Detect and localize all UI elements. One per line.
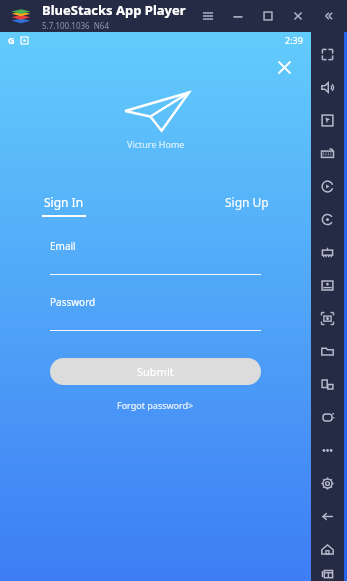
button[interactable]: Sign In bbox=[42, 194, 86, 217]
staticText: Submit bbox=[137, 364, 174, 379]
staticText: Sign Up bbox=[225, 194, 269, 210]
staticText: Victure Home bbox=[127, 138, 185, 150]
button[interactable]: Submit bbox=[50, 358, 261, 385]
button[interactable]: Recents bbox=[311, 566, 344, 581]
staticText: Password bbox=[50, 295, 96, 309]
button[interactable]: Install APK bbox=[311, 269, 344, 302]
button[interactable]: Maximize bbox=[253, 0, 283, 32]
button[interactable]: Fullscreen bbox=[311, 38, 344, 71]
button[interactable]: Settings bbox=[311, 467, 344, 500]
staticText: 5.7.100.1036 N64 bbox=[42, 20, 110, 31]
button[interactable]: Back bbox=[311, 500, 344, 533]
button[interactable]: Record bbox=[311, 170, 344, 203]
button[interactable]: Multi instance bbox=[311, 236, 344, 269]
staticText: Sign In bbox=[44, 194, 84, 210]
staticText: Email bbox=[50, 239, 76, 253]
button[interactable]: Media manager bbox=[311, 335, 344, 368]
button[interactable]: Minimize bbox=[223, 0, 253, 32]
staticText: Forgot password> bbox=[117, 399, 194, 411]
button[interactable]: Volume bbox=[311, 71, 344, 104]
staticText: G bbox=[8, 34, 15, 46]
button[interactable]: Screenshot bbox=[311, 302, 344, 335]
staticText: BlueStacks App Player bbox=[42, 1, 186, 19]
button[interactable]: Close bbox=[273, 56, 295, 78]
button[interactable]: Pointer bbox=[311, 104, 344, 137]
button[interactable]: Shake bbox=[311, 401, 344, 434]
button[interactable]: Rotate bbox=[311, 368, 344, 401]
button[interactable]: Menu bbox=[193, 0, 223, 32]
button[interactable]: Close bbox=[283, 0, 313, 32]
button[interactable]: Forgot password> bbox=[117, 399, 194, 411]
button[interactable]: Keyboard bbox=[311, 137, 344, 170]
button[interactable]: More bbox=[311, 434, 344, 467]
button[interactable]: Collapse bbox=[313, 0, 343, 32]
staticText: 2:39 bbox=[285, 34, 303, 46]
button[interactable]: Home bbox=[311, 533, 344, 566]
button[interactable]: Macro bbox=[311, 203, 344, 236]
button[interactable]: Sign Up bbox=[225, 194, 269, 210]
